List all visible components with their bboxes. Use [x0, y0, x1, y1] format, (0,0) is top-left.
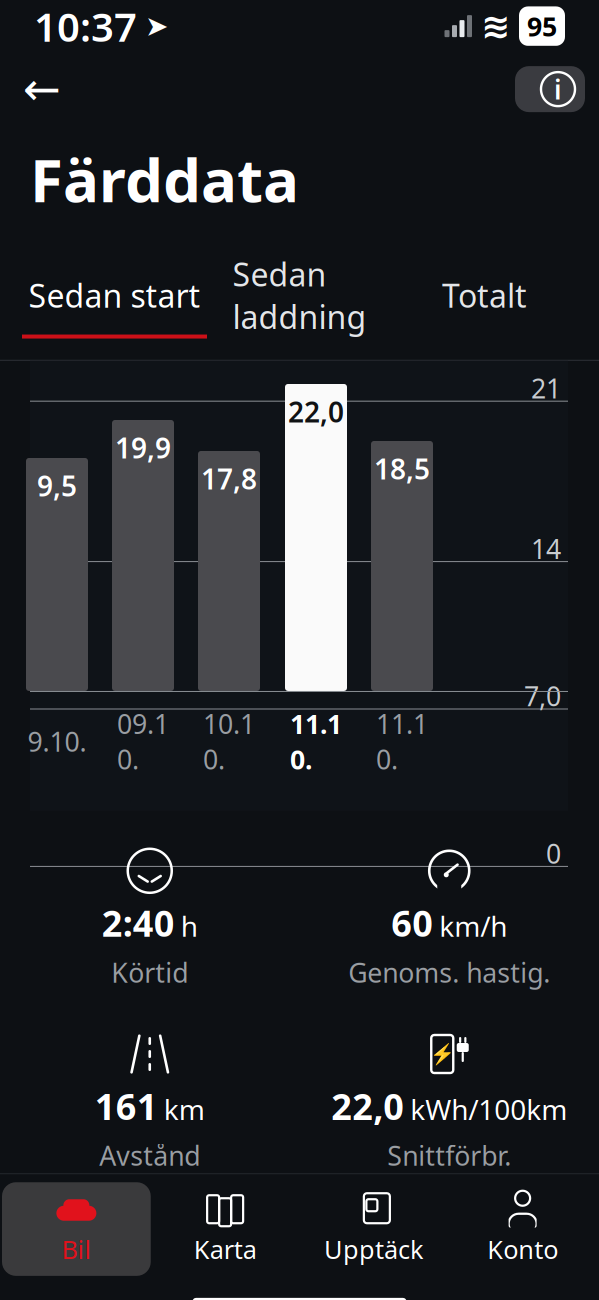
staticText: ⚡: [430, 1043, 455, 1065]
staticText: 17,8: [201, 460, 257, 497]
staticText: h: [181, 907, 198, 944]
staticText: Upptäck: [324, 1232, 424, 1266]
staticText: Genoms. hastig.: [348, 955, 550, 990]
button[interactable]: Totalt: [392, 274, 577, 339]
staticText: Konto: [487, 1232, 558, 1266]
staticText: 9.10.: [27, 724, 86, 759]
button[interactable]: Karta: [151, 1182, 300, 1276]
staticText: 18,5: [374, 450, 430, 487]
staticText: km/h: [439, 907, 507, 944]
staticText: Bil: [61, 1232, 91, 1266]
staticText: 10:37: [34, 0, 137, 53]
staticText: 14: [531, 531, 561, 566]
staticText: 22,0: [331, 1082, 404, 1130]
staticText: kWh/100km: [410, 1090, 567, 1128]
staticText: 9,5: [37, 467, 77, 504]
button[interactable]: Back: [14, 63, 70, 115]
staticText: Totalt: [442, 274, 527, 317]
staticText: Snittförbr.: [387, 1138, 511, 1173]
staticText: 95: [527, 8, 557, 44]
staticText: 22,0: [288, 393, 344, 430]
staticText: i: [554, 71, 562, 107]
staticText: Sedan laddning: [232, 253, 366, 338]
staticText: 60: [391, 899, 433, 947]
staticText: 2:40: [102, 899, 175, 947]
staticText: km: [164, 1090, 205, 1128]
staticText: Avstånd: [99, 1138, 200, 1173]
staticText: 0: [546, 836, 561, 871]
staticText: 21: [531, 370, 561, 406]
staticText: ➤: [145, 10, 168, 42]
staticText: 7,0: [524, 678, 561, 714]
button[interactable]: Upptäck: [299, 1182, 448, 1276]
staticText: 11.10.: [290, 706, 342, 777]
button[interactable]: Information: [515, 66, 585, 112]
staticText: Sedan start: [28, 274, 200, 317]
staticText: Karta: [194, 1232, 257, 1266]
staticText: ≋: [481, 6, 510, 46]
staticText: ←: [23, 63, 61, 115]
button[interactable]: Bil: [2, 1182, 151, 1276]
button[interactable]: Konto: [448, 1182, 597, 1276]
staticText: 19,9: [115, 429, 171, 466]
staticText: 09.10.: [117, 706, 169, 777]
staticText: 10.10.: [203, 706, 255, 777]
staticText: Färddata: [30, 139, 299, 219]
button[interactable]: Sedan start: [22, 274, 207, 339]
staticText: Körtid: [111, 955, 188, 990]
staticText: 11.10.: [376, 706, 428, 777]
button[interactable]: Sedan laddning: [207, 253, 392, 360]
staticText: 161: [95, 1082, 158, 1130]
